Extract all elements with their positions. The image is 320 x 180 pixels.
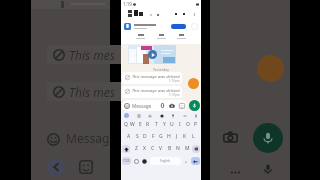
button[interactable]: This mes (47, 82, 126, 101)
staticText: ?123 (123, 159, 130, 163)
staticText: Yesterday (121, 67, 201, 72)
staticText: F (152, 133, 155, 140)
staticText: Message (66, 130, 110, 148)
button[interactable]: A (125, 132, 133, 141)
button[interactable]: Shift (122, 145, 130, 153)
staticText: M (185, 145, 190, 152)
button[interactable]: M (184, 144, 190, 153)
button[interactable]: Y (160, 120, 168, 129)
button[interactable] (226, 163, 244, 180)
button[interactable]: E (136, 120, 144, 129)
staticText: V (159, 145, 163, 152)
button[interactable]: Z (133, 144, 139, 153)
staticText: Z (135, 145, 138, 152)
button[interactable]: Voice message (253, 123, 283, 153)
staticText: K (183, 133, 187, 140)
button[interactable]: This mes (47, 45, 126, 64)
button[interactable]: Message (122, 100, 187, 111)
staticText: Message (132, 103, 152, 109)
button[interactable]: C (150, 144, 156, 153)
button[interactable]: V (158, 144, 164, 153)
button[interactable]: Camera (219, 126, 241, 148)
staticText: S (136, 133, 139, 140)
button[interactable]: P (192, 120, 200, 129)
staticText: Q (124, 121, 128, 128)
button[interactable]: D (141, 132, 149, 141)
staticText: P (194, 121, 198, 128)
staticText: H (167, 133, 171, 140)
staticText: This message was deleted (132, 88, 180, 94)
staticText: T (155, 121, 158, 128)
button[interactable]: G (157, 132, 165, 141)
button[interactable]: B (167, 144, 173, 153)
staticText: This message was deleted (132, 74, 180, 80)
staticText: A (127, 133, 131, 140)
button[interactable]: ?123 (122, 157, 131, 165)
button[interactable]: Back (47, 158, 65, 176)
button[interactable] (128, 45, 176, 64)
staticText: U (170, 121, 174, 128)
button[interactable]: Stickers (79, 160, 93, 174)
button[interactable] (171, 24, 186, 29)
button[interactable]: Enter (191, 157, 200, 165)
button[interactable]: This message was deleted (122, 72, 182, 84)
button[interactable]: O (184, 120, 192, 129)
button[interactable]: Message (31, 130, 110, 148)
staticText: This mes (69, 84, 116, 100)
button[interactable]: I (176, 120, 184, 129)
staticText: G (159, 133, 163, 140)
staticText: 1:19 pm (169, 93, 180, 97)
staticText: R (146, 121, 150, 128)
button[interactable]: U (168, 120, 176, 129)
staticText: J (176, 133, 178, 140)
button[interactable]: Microphone (260, 161, 276, 177)
button[interactable]: English (150, 157, 181, 165)
staticText: D (143, 133, 147, 140)
button[interactable]: W (129, 120, 136, 129)
staticText: O (186, 121, 190, 128)
button[interactable]: Backspace (192, 145, 200, 153)
staticText: 1:19 pm (169, 79, 180, 83)
staticText: 1:19 (123, 1, 132, 7)
button[interactable]: Send voice message (189, 100, 200, 111)
button[interactable]: N (175, 144, 181, 153)
staticText: N (176, 145, 180, 152)
staticText: English (160, 159, 171, 163)
button[interactable]: F (149, 132, 157, 141)
button[interactable]: T (152, 120, 160, 129)
button[interactable]: X (141, 144, 147, 153)
staticText: W (130, 121, 135, 128)
button[interactable]: J (173, 132, 181, 141)
staticText: X (143, 145, 146, 152)
staticText: B (168, 145, 172, 152)
button[interactable]: Q (122, 120, 129, 129)
staticText: This mes (69, 47, 116, 63)
button[interactable]: K (181, 132, 189, 141)
staticText: I (179, 121, 181, 128)
button[interactable]: S (133, 132, 141, 141)
staticText: E (139, 121, 142, 128)
button[interactable]: R (144, 120, 152, 129)
button[interactable]: This message was deleted (122, 86, 182, 98)
staticText: Y (163, 121, 166, 128)
button[interactable] (121, 21, 201, 32)
button[interactable]: L (189, 132, 197, 141)
staticText: C (151, 145, 155, 152)
staticText: L (192, 133, 195, 140)
button[interactable] (257, 55, 284, 82)
button[interactable]: H (165, 132, 173, 141)
